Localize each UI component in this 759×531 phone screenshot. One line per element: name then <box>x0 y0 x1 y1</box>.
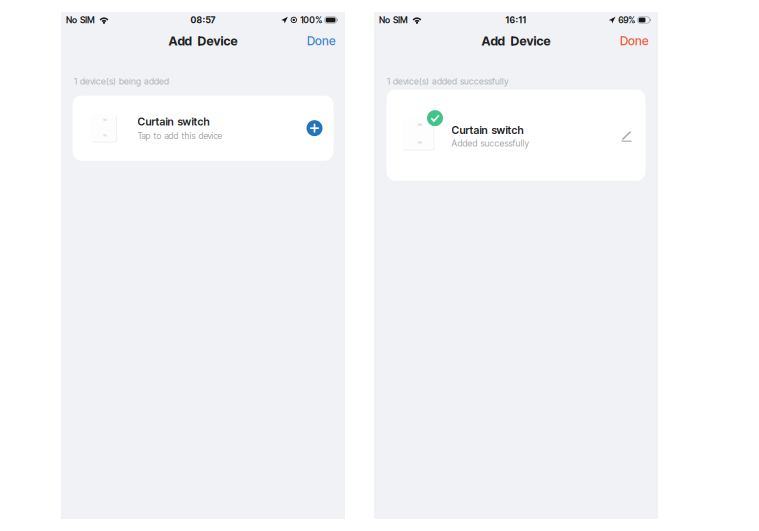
button[interactable]: Curtain switch <box>72 96 333 161</box>
button[interactable]: Curtain switch <box>386 90 645 181</box>
staticText: Curtain switch <box>137 115 209 128</box>
staticText: No SIM <box>66 15 95 25</box>
staticText: 1 device(s) added successfully <box>387 76 508 87</box>
staticText: Tap to add this device <box>137 131 222 141</box>
staticText: 08:57 <box>190 15 215 25</box>
staticText: Done <box>307 34 336 48</box>
staticText: 69% <box>618 15 635 25</box>
staticText: 1 device(s) being added <box>74 76 169 87</box>
staticText: Add Device <box>168 33 237 49</box>
staticText: No SIM <box>379 15 408 25</box>
staticText: Curtain switch <box>451 124 523 136</box>
staticText: Done <box>620 34 649 48</box>
staticText: Added successfully <box>451 138 528 149</box>
staticText: 16:11 <box>505 15 526 25</box>
button[interactable]: Done <box>298 30 345 52</box>
staticText: 100% <box>300 15 322 25</box>
staticText: Add Device <box>481 33 550 49</box>
button[interactable]: Done <box>611 30 658 52</box>
